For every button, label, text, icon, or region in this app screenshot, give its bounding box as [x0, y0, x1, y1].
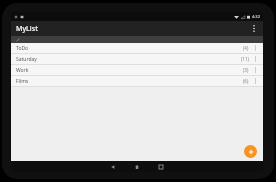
staticText: (3)	[243, 67, 249, 73]
button[interactable]: Recent apps	[149, 161, 173, 172]
staticText: Films	[16, 78, 29, 85]
button[interactable]: ToDo	[11, 43, 263, 53]
staticText: 4:32	[252, 14, 260, 19]
button[interactable]: Work	[11, 65, 263, 75]
button[interactable]: Home	[125, 161, 149, 172]
staticText: (11)	[241, 56, 249, 62]
button[interactable]: More options	[247, 22, 260, 35]
staticText: (4)	[243, 45, 249, 51]
button[interactable]: Back	[101, 161, 125, 172]
staticText: Saturday	[16, 56, 37, 63]
button[interactable]: Films	[11, 76, 263, 86]
staticText: MyList	[16, 24, 38, 34]
button[interactable]: Edit	[15, 37, 21, 43]
button[interactable]: Saturday	[11, 54, 263, 64]
button[interactable]: Add list	[244, 145, 257, 158]
staticText: Work	[16, 67, 29, 74]
staticText: ToDo	[16, 45, 29, 52]
staticText: (6)	[243, 78, 249, 84]
